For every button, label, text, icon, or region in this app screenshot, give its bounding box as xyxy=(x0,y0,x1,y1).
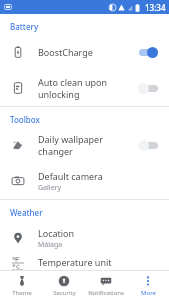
button[interactable]: Notifications xyxy=(85,271,127,300)
button[interactable]: More xyxy=(127,271,169,300)
staticText: Toolbox xyxy=(10,114,40,125)
button[interactable]: Toggle on xyxy=(136,44,160,60)
staticText: Málaga xyxy=(38,240,63,250)
staticText: Theme xyxy=(12,289,32,297)
staticText: More xyxy=(141,289,156,297)
button[interactable]: Auto clean upon unlocking xyxy=(0,70,169,106)
staticText: Location xyxy=(38,227,75,239)
staticText: Notifications xyxy=(88,289,124,297)
staticText: BoostCharge xyxy=(38,46,93,58)
staticText: Auto clean upon unlocking xyxy=(38,76,136,100)
button[interactable]: Temperature unit xyxy=(0,256,169,270)
staticText: Battery xyxy=(10,21,39,32)
button[interactable]: Security xyxy=(43,271,85,300)
staticText: Security xyxy=(53,289,76,297)
button[interactable]: Toggle off xyxy=(136,137,160,153)
button[interactable]: Daily wallpaper changer xyxy=(0,127,169,163)
button[interactable]: Toggle off xyxy=(136,80,160,96)
button[interactable]: BoostCharge xyxy=(0,34,169,70)
button[interactable]: Default camera xyxy=(0,163,169,199)
staticText: Daily wallpaper changer xyxy=(38,133,136,157)
staticText: Gallery xyxy=(38,183,62,193)
staticText: Default camera xyxy=(38,170,103,182)
button[interactable]: Location xyxy=(0,220,169,256)
staticText: 13:34 xyxy=(145,2,166,13)
staticText: Temperature unit xyxy=(38,256,112,268)
button[interactable]: Theme xyxy=(0,271,43,300)
staticText: Weather xyxy=(10,207,43,218)
